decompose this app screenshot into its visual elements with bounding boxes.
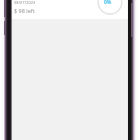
staticText: 0% [104, 0, 112, 6]
staticText: 08/07/2023 [14, 0, 36, 5]
button[interactable]: Daily budget progress 0 percent [104, 0, 112, 6]
button[interactable]: 08/07/2023 [14, 0, 36, 14]
staticText: $ 98 left [14, 7, 35, 14]
